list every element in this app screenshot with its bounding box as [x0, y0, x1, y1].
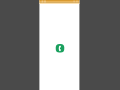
- button[interactable]: App logo: [56, 44, 65, 53]
- button[interactable]: Status bar: [39, 0, 79, 5]
